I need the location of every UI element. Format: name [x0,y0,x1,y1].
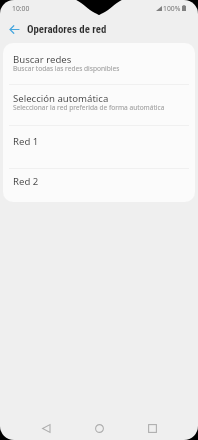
staticText: Seleccionar la red preferida de forma au… [13,103,165,112]
button[interactable]: Red 1 [3,126,195,168]
button[interactable]: Back [3,18,25,40]
staticText: Selección automática [13,92,109,105]
button[interactable]: Selección automática [3,85,195,125]
button[interactable]: Back [34,416,58,440]
staticText: Operadores de red [27,23,107,36]
button[interactable]: Home [87,416,111,440]
button[interactable]: Red 2 [3,169,195,202]
staticText: 100% [163,4,181,13]
button[interactable]: Recents [140,416,164,440]
staticText: Buscar todas las redes disponibles [13,64,120,73]
button[interactable]: Buscar redes [3,43,195,84]
staticText: Red 1 [13,135,39,148]
staticText: Red 2 [13,175,39,188]
staticText: 10:00 [12,4,30,13]
staticText: Buscar redes [13,53,72,66]
